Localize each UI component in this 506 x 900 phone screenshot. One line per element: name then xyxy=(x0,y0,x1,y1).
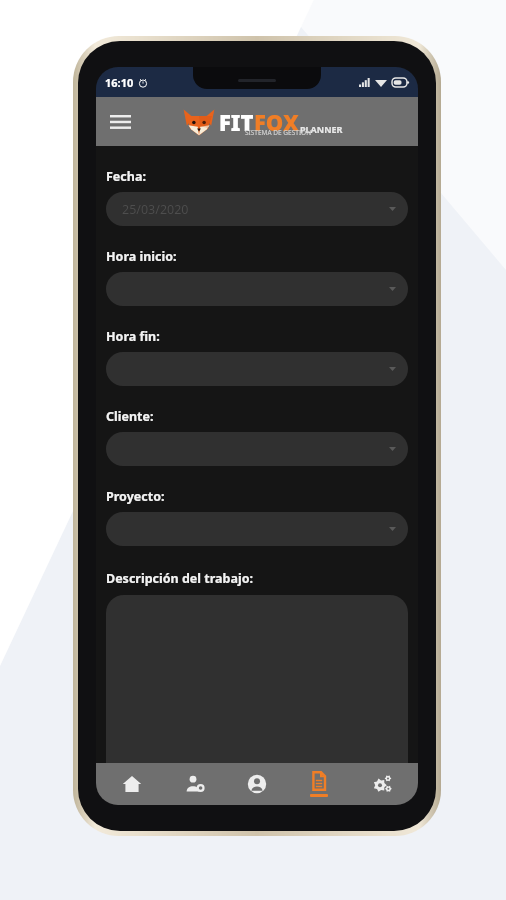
staticText: 25/03/2020 xyxy=(122,201,189,218)
button[interactable]: Profile xyxy=(231,763,283,805)
staticText: Fecha: xyxy=(106,168,146,185)
button[interactable]: Home xyxy=(106,763,158,805)
staticText: FOX xyxy=(254,107,299,137)
staticText: Hora inicio: xyxy=(106,248,177,265)
staticText: FIT xyxy=(219,107,254,137)
button[interactable]: Menu xyxy=(102,104,138,140)
button[interactable]: Settings xyxy=(356,763,408,805)
button[interactable]: Select field xyxy=(106,512,408,546)
staticText: PLANNER xyxy=(300,123,343,135)
staticText: 16:10 xyxy=(105,75,134,90)
button[interactable]: Select field xyxy=(106,272,408,306)
button[interactable]: Select field xyxy=(106,432,408,466)
staticText: SISTEMA DE GESTIÓN xyxy=(245,128,312,137)
button[interactable]: Select field xyxy=(106,352,408,386)
staticText: Cliente: xyxy=(106,408,154,425)
button[interactable]: Select field xyxy=(106,192,408,226)
staticText: Hora fin: xyxy=(106,328,160,345)
button[interactable]: Clients xyxy=(169,763,221,805)
button[interactable]: Reports xyxy=(293,763,345,805)
staticText: Proyecto: xyxy=(106,488,165,505)
staticText: Descripción del trabajo: xyxy=(106,570,253,587)
